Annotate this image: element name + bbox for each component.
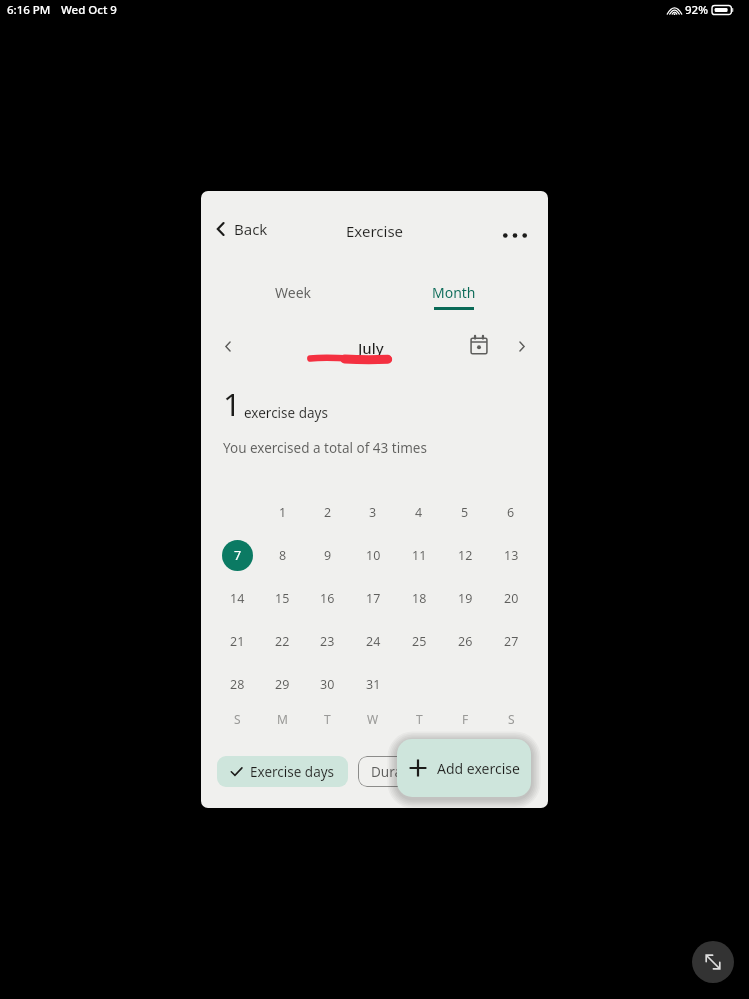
staticText: 12 xyxy=(458,547,473,564)
staticText: Duration xyxy=(371,763,427,781)
button[interactable]: 18 xyxy=(396,577,442,620)
staticText: Wed Oct 9 xyxy=(61,2,117,18)
staticText: 24 xyxy=(366,633,381,650)
staticText: 15 xyxy=(275,590,290,607)
button[interactable]: Pick a date xyxy=(461,327,497,363)
button[interactable]: 13 xyxy=(488,534,534,577)
button[interactable]: 29 xyxy=(260,663,305,706)
button[interactable]: 14 xyxy=(215,577,260,620)
button[interactable]: 25 xyxy=(396,620,442,663)
staticText: 22 xyxy=(275,633,290,650)
button[interactable]: 27 xyxy=(488,620,534,663)
button[interactable]: 4 xyxy=(396,491,442,534)
staticText: 21 xyxy=(230,633,245,650)
button[interactable]: 21 xyxy=(215,620,260,663)
button[interactable]: More options xyxy=(497,217,533,253)
button[interactable]: 20 xyxy=(488,577,534,620)
staticText: 23 xyxy=(320,633,335,650)
button[interactable]: Next month xyxy=(504,329,538,363)
staticText: 11 xyxy=(412,547,427,564)
staticText: 30 xyxy=(320,676,335,693)
staticText: July xyxy=(358,338,384,358)
staticText: 17 xyxy=(366,590,381,607)
staticText: 19 xyxy=(458,590,473,607)
button[interactable]: 31 xyxy=(350,663,396,706)
staticText: 27 xyxy=(504,633,519,650)
staticText: S xyxy=(234,711,241,727)
staticText: 1 xyxy=(223,383,241,425)
button[interactable]: Distance xyxy=(450,756,531,787)
button[interactable]: 11 xyxy=(396,534,442,577)
staticText: T xyxy=(324,711,331,727)
button[interactable]: 23 xyxy=(305,620,350,663)
button[interactable]: 8 xyxy=(260,534,305,577)
button[interactable]: 26 xyxy=(442,620,488,663)
button[interactable]: 3 xyxy=(350,491,396,534)
button[interactable]: 12 xyxy=(442,534,488,577)
button[interactable]: 7 xyxy=(215,534,260,577)
button[interactable]: 28 xyxy=(215,663,260,706)
button[interactable]: 19 xyxy=(442,577,488,620)
staticText: 26 xyxy=(458,633,473,650)
staticText: 28 xyxy=(230,676,245,693)
staticText: You exercised a total of 43 times xyxy=(223,439,427,457)
staticText: 6:16 PM xyxy=(7,2,51,18)
button[interactable]: 5 xyxy=(442,491,488,534)
button[interactable]: 22 xyxy=(260,620,305,663)
staticText: 92% xyxy=(685,2,708,18)
staticText: 8 xyxy=(279,547,287,564)
staticText: Exercise days xyxy=(250,763,335,781)
staticText: 13 xyxy=(504,547,519,564)
staticText: 1 xyxy=(279,504,287,521)
staticText: Week xyxy=(275,283,312,302)
button[interactable]: 15 xyxy=(260,577,305,620)
button[interactable]: Add exercise xyxy=(397,739,531,797)
button[interactable]: 9 xyxy=(305,534,350,577)
staticText: 5 xyxy=(461,504,469,521)
button[interactable]: 1 xyxy=(260,491,305,534)
button[interactable]: Duration xyxy=(358,756,440,787)
button[interactable]: Week xyxy=(263,277,324,308)
button[interactable]: 10 xyxy=(350,534,396,577)
staticText: Add exercise xyxy=(437,759,520,778)
staticText: 20 xyxy=(504,590,519,607)
staticText: 6 xyxy=(507,504,515,521)
button[interactable]: 30 xyxy=(305,663,350,706)
staticText: Exercise xyxy=(201,221,548,241)
staticText: 4 xyxy=(415,504,423,521)
staticText: F xyxy=(462,711,469,727)
staticText: S xyxy=(508,711,515,727)
button[interactable]: Exercise days xyxy=(217,756,348,787)
staticText: 9 xyxy=(324,547,332,564)
button[interactable]: 17 xyxy=(350,577,396,620)
staticText: 29 xyxy=(275,676,290,693)
button[interactable]: Previous month xyxy=(211,329,245,363)
button[interactable]: Month xyxy=(420,277,488,316)
button[interactable]: Resize window xyxy=(692,941,734,983)
button[interactable]: Back xyxy=(209,215,272,243)
button[interactable]: 24 xyxy=(350,620,396,663)
staticText: 2 xyxy=(324,504,332,521)
staticText: M xyxy=(277,711,288,727)
staticText: exercise days xyxy=(244,404,328,422)
staticText: 3 xyxy=(369,504,377,521)
staticText: 31 xyxy=(366,676,381,693)
button[interactable]: 6 xyxy=(488,491,534,534)
staticText: 14 xyxy=(230,590,245,607)
staticText: 16 xyxy=(320,590,335,607)
staticText: Back xyxy=(234,219,268,239)
staticText: 10 xyxy=(366,547,381,564)
staticText: T xyxy=(416,711,423,727)
staticText: W xyxy=(367,711,379,727)
button[interactable]: 16 xyxy=(305,577,350,620)
staticText: Month xyxy=(432,283,476,302)
staticText: Distance xyxy=(463,763,518,781)
button[interactable]: 2 xyxy=(305,491,350,534)
staticText: 7 xyxy=(234,547,242,564)
staticText: 18 xyxy=(412,590,427,607)
staticText: 25 xyxy=(412,633,427,650)
